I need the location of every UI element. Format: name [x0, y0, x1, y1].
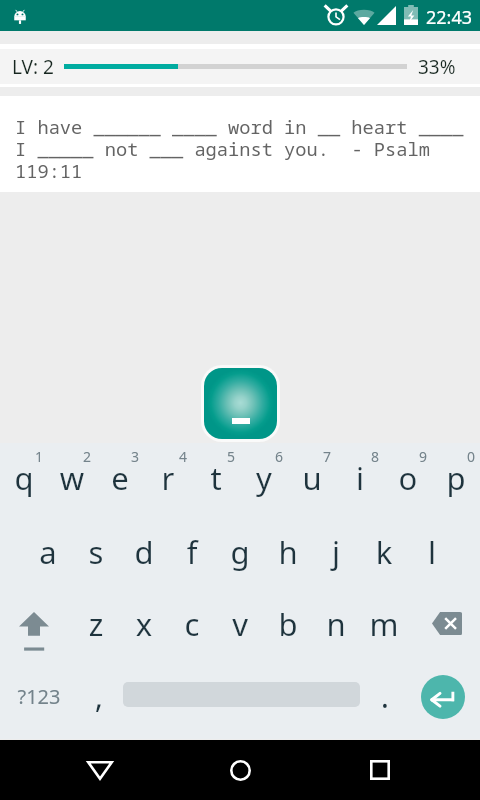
- staticText: z: [72, 603, 120, 645]
- button[interactable]: d: [120, 519, 168, 577]
- staticText: 7: [303, 447, 351, 466]
- button[interactable]: 7: [288, 443, 336, 505]
- staticText: l: [408, 531, 456, 573]
- button[interactable]: k: [360, 519, 408, 577]
- button[interactable]: a: [24, 519, 72, 577]
- button[interactable]: f: [168, 519, 216, 577]
- button[interactable]: z: [72, 590, 120, 648]
- button[interactable]: ,: [76, 658, 120, 714]
- button[interactable]: Back: [70, 740, 130, 800]
- staticText: j: [312, 531, 360, 573]
- button[interactable]: b: [264, 590, 312, 648]
- button[interactable]: c: [168, 590, 216, 648]
- staticText: f: [168, 531, 216, 573]
- staticText: q: [0, 457, 48, 499]
- button[interactable]: 3: [96, 443, 144, 505]
- staticText: d: [120, 531, 168, 573]
- button[interactable]: g: [216, 519, 264, 577]
- staticText: ,: [77, 675, 121, 717]
- staticText: ?123: [1, 683, 77, 710]
- staticText: 4: [159, 447, 207, 466]
- button[interactable]: Reveal word: [204, 368, 277, 439]
- button[interactable]: 6: [240, 443, 288, 505]
- staticText: 0: [447, 447, 480, 466]
- staticText: m: [360, 603, 408, 645]
- staticText: y: [240, 457, 288, 499]
- staticText: 9: [399, 447, 447, 466]
- button[interactable]: 9: [384, 443, 432, 505]
- button[interactable]: l: [408, 519, 456, 577]
- staticText: o: [384, 457, 432, 499]
- staticText: LV: 2: [12, 54, 54, 80]
- button[interactable]: h: [264, 519, 312, 577]
- button[interactable]: .: [360, 658, 408, 714]
- button[interactable]: x: [120, 590, 168, 648]
- button[interactable]: v: [216, 590, 264, 648]
- staticText: u: [288, 457, 336, 499]
- staticText: 2: [63, 447, 111, 466]
- staticText: a: [24, 531, 72, 573]
- staticText: 1: [15, 447, 63, 466]
- staticText: 6: [255, 447, 303, 466]
- staticText: s: [72, 531, 120, 573]
- staticText: p: [432, 457, 480, 499]
- staticText: h: [264, 531, 312, 573]
- staticText: n: [312, 603, 360, 645]
- button[interactable]: Recents: [350, 740, 410, 800]
- staticText: v: [216, 603, 264, 645]
- button[interactable]: n: [312, 590, 360, 648]
- staticText: k: [360, 531, 408, 573]
- staticText: 22:43: [426, 5, 473, 30]
- button[interactable]: Home: [210, 740, 270, 800]
- staticText: b: [264, 603, 312, 645]
- button[interactable]: 8: [336, 443, 384, 505]
- button[interactable]: s: [72, 519, 120, 577]
- staticText: w: [48, 457, 96, 499]
- staticText: t: [192, 457, 240, 499]
- staticText: 33%: [418, 54, 456, 80]
- button[interactable]: m: [360, 590, 408, 648]
- staticText: i: [336, 457, 384, 499]
- staticText: r: [144, 457, 192, 499]
- button[interactable]: Backspace: [420, 590, 480, 648]
- staticText: 5: [207, 447, 255, 466]
- staticText: g: [216, 531, 264, 573]
- button[interactable]: 4: [144, 443, 192, 505]
- button[interactable]: 0: [432, 443, 480, 505]
- staticText: x: [120, 603, 168, 645]
- button[interactable]: j: [312, 519, 360, 577]
- button[interactable]: ?123: [0, 658, 76, 714]
- staticText: c: [168, 603, 216, 645]
- staticText: .: [361, 675, 409, 717]
- button[interactable]: 1: [0, 443, 48, 505]
- button[interactable]: Enter: [421, 675, 465, 719]
- button[interactable]: 5: [192, 443, 240, 505]
- button[interactable]: Shift: [0, 590, 72, 648]
- button[interactable]: 2: [48, 443, 96, 505]
- staticText: 3: [111, 447, 159, 466]
- staticText: e: [96, 457, 144, 499]
- staticText: 8: [351, 447, 399, 466]
- staticText: I have ______ ____ word in __ heart ____…: [15, 114, 464, 183]
